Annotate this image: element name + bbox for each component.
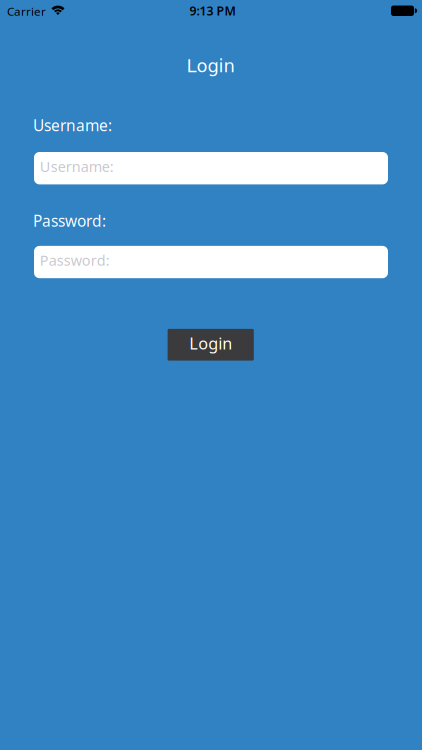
button[interactable]: Password: <box>34 246 388 278</box>
staticText: Carrier <box>7 3 46 19</box>
staticText: Login <box>189 332 232 354</box>
staticText: Password: <box>33 210 106 231</box>
staticText: Username: <box>33 115 112 136</box>
staticText: 9:13 PM <box>189 2 235 19</box>
staticText: Password: <box>40 250 110 270</box>
staticText: Username: <box>40 156 114 176</box>
button[interactable]: Login <box>168 329 254 361</box>
button[interactable]: Username: <box>34 152 388 184</box>
staticText: Login <box>186 56 234 77</box>
